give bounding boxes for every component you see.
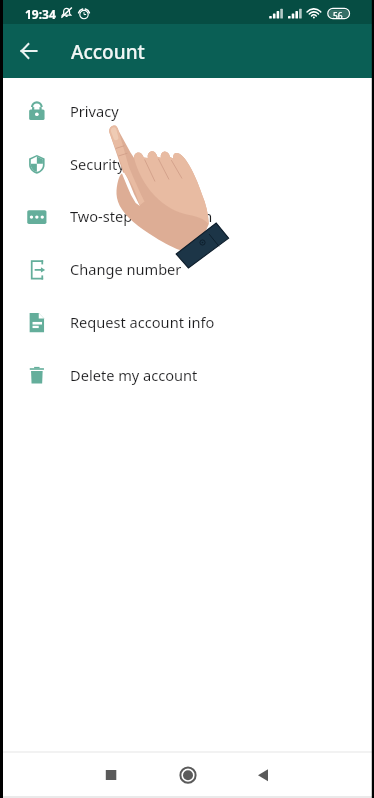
button[interactable]: Home <box>168 753 208 793</box>
button[interactable]: Recent apps <box>91 753 131 793</box>
button[interactable]: Back <box>15 37 43 65</box>
button[interactable]: Security <box>0 137 374 190</box>
staticText: Privacy <box>70 101 119 121</box>
staticText: Account <box>71 39 145 65</box>
button[interactable]: Back <box>243 753 283 793</box>
staticText: Request account info <box>70 312 215 332</box>
button[interactable]: Two-step verification <box>0 189 374 242</box>
staticText: Two-step verification <box>70 206 213 226</box>
button[interactable]: Privacy <box>0 84 374 137</box>
button[interactable]: Change number <box>0 242 374 295</box>
staticText: Delete my account <box>70 365 198 385</box>
button[interactable]: Delete my account <box>0 348 374 401</box>
button[interactable]: Request account info <box>0 295 374 348</box>
staticText: Change number <box>70 259 182 279</box>
staticText: Security <box>70 154 125 174</box>
staticText: 56 <box>333 10 343 22</box>
staticText: 19:34 <box>25 6 56 22</box>
